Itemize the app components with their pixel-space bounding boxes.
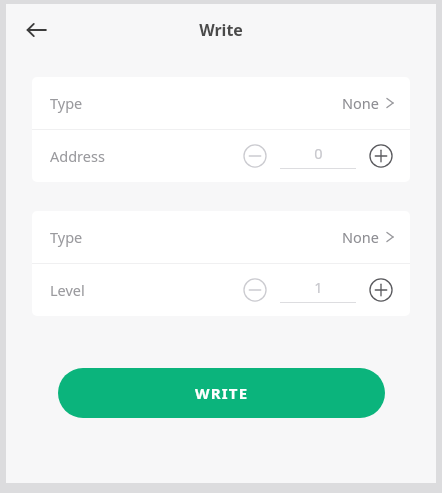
button[interactable]: Type xyxy=(32,77,410,129)
button[interactable]: Decrease Address xyxy=(240,141,270,171)
staticText: 0 xyxy=(314,143,323,163)
button[interactable]: Back xyxy=(17,11,55,49)
staticText: Address xyxy=(50,146,105,166)
staticText: Type xyxy=(50,227,83,247)
staticText: WRITE xyxy=(195,383,249,403)
staticText: Write xyxy=(199,19,243,41)
staticText: Level xyxy=(50,280,85,300)
staticText: Type xyxy=(50,93,83,113)
button[interactable]: WRITE xyxy=(58,368,385,418)
button[interactable]: 1 xyxy=(278,277,358,303)
button[interactable]: Increase Address xyxy=(366,141,396,171)
staticText: None xyxy=(342,93,379,113)
staticText: 1 xyxy=(314,277,323,297)
button[interactable]: Type xyxy=(32,211,410,263)
button[interactable]: Increase Level xyxy=(366,275,396,305)
staticText: None xyxy=(342,227,379,247)
button[interactable]: 0 xyxy=(278,143,358,169)
button[interactable]: Decrease Level xyxy=(240,275,270,305)
